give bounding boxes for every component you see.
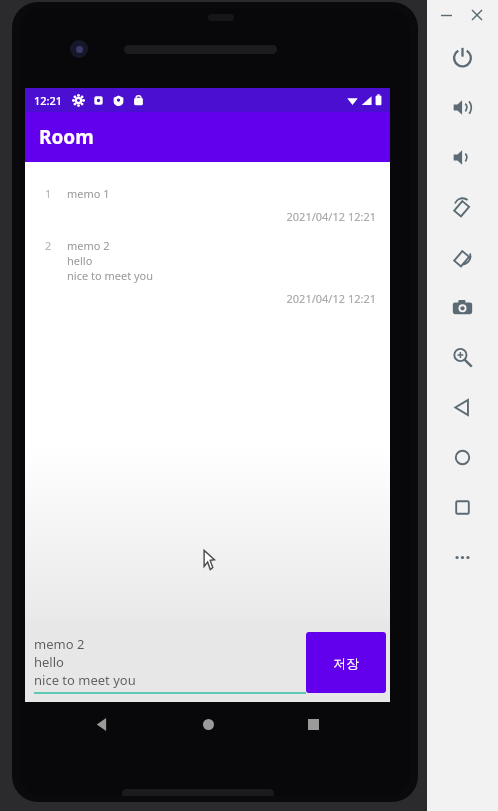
button[interactable]: Rotate left <box>440 185 484 229</box>
button[interactable]: Rotate right <box>440 235 484 279</box>
button[interactable]: memo 2 <box>34 635 306 694</box>
staticText: memo 1 <box>67 186 110 201</box>
staticText: 1 <box>45 186 52 201</box>
staticText: Room <box>39 124 94 150</box>
button[interactable]: 저장 <box>306 632 386 693</box>
staticText: 2021/04/12 12:21 <box>45 209 376 224</box>
button[interactable]: Back <box>440 385 484 429</box>
button[interactable]: Home <box>440 435 484 479</box>
staticText: hello <box>34 653 64 671</box>
staticText: hello <box>67 253 93 268</box>
staticText: memo 2 <box>67 238 110 253</box>
staticText: 12:21 <box>34 93 63 108</box>
staticText: 2 <box>45 238 52 253</box>
button[interactable]: Zoom <box>440 335 484 379</box>
staticText: 2021/04/12 12:21 <box>45 291 376 306</box>
button[interactable]: Overview <box>440 485 484 529</box>
button[interactable]: Volume up <box>440 85 484 129</box>
button[interactable]: Volume down <box>440 135 484 179</box>
staticText: memo 2 <box>34 635 85 653</box>
button[interactable]: Recent apps <box>296 707 330 741</box>
button[interactable]: 1 <box>25 178 390 230</box>
button[interactable]: Take screenshot <box>440 285 484 329</box>
button[interactable]: Back <box>85 707 119 741</box>
staticText: nice to meet you <box>67 268 154 283</box>
staticText: 저장 <box>333 655 359 671</box>
button[interactable]: Power <box>440 35 484 79</box>
button[interactable]: 2 <box>25 230 390 312</box>
button[interactable]: Home <box>191 707 225 741</box>
button[interactable]: Minimize <box>433 2 459 28</box>
button[interactable]: Close <box>464 2 490 28</box>
button[interactable]: More <box>440 535 484 579</box>
staticText: nice to meet you <box>34 671 136 689</box>
